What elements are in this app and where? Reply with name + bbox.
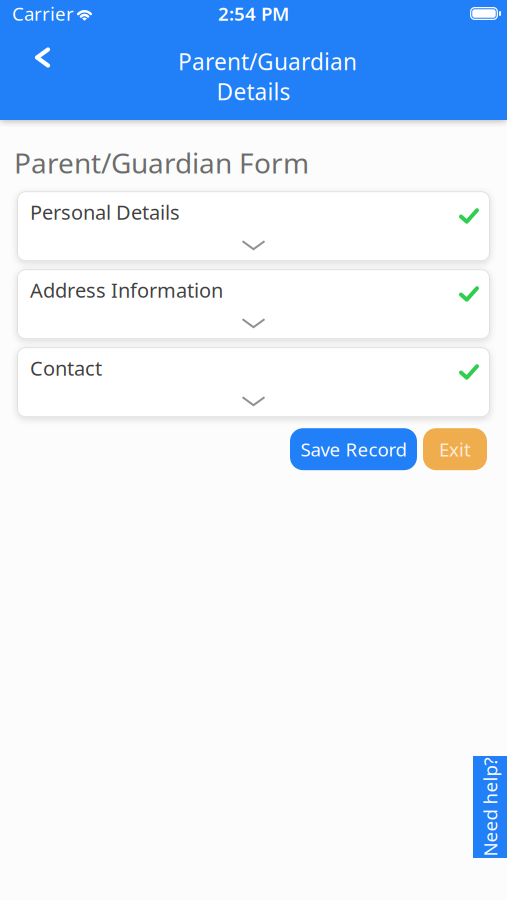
staticText: Exit — [439, 437, 471, 462]
staticText: Parent/Guardian Form — [14, 144, 309, 181]
staticText: 2:54 PM — [218, 1, 289, 26]
button[interactable]: Save Record — [290, 428, 417, 470]
button[interactable]: Back — [0, 39, 68, 75]
button[interactable]: Contact — [17, 347, 490, 417]
staticText: Parent/Guardian — [178, 46, 357, 76]
button[interactable]: Exit — [423, 428, 487, 470]
staticText: Need help? — [440, 795, 507, 819]
staticText: Save Record — [300, 437, 406, 462]
staticText: Contact — [30, 355, 102, 381]
button[interactable]: Need help? — [473, 756, 507, 858]
staticText: Address Information — [30, 277, 223, 303]
staticText: Details — [216, 76, 290, 107]
button[interactable]: Address Information — [17, 269, 490, 339]
staticText: Personal Details — [30, 199, 180, 225]
staticText: Carrier — [12, 1, 74, 26]
button[interactable]: Personal Details — [17, 191, 490, 261]
